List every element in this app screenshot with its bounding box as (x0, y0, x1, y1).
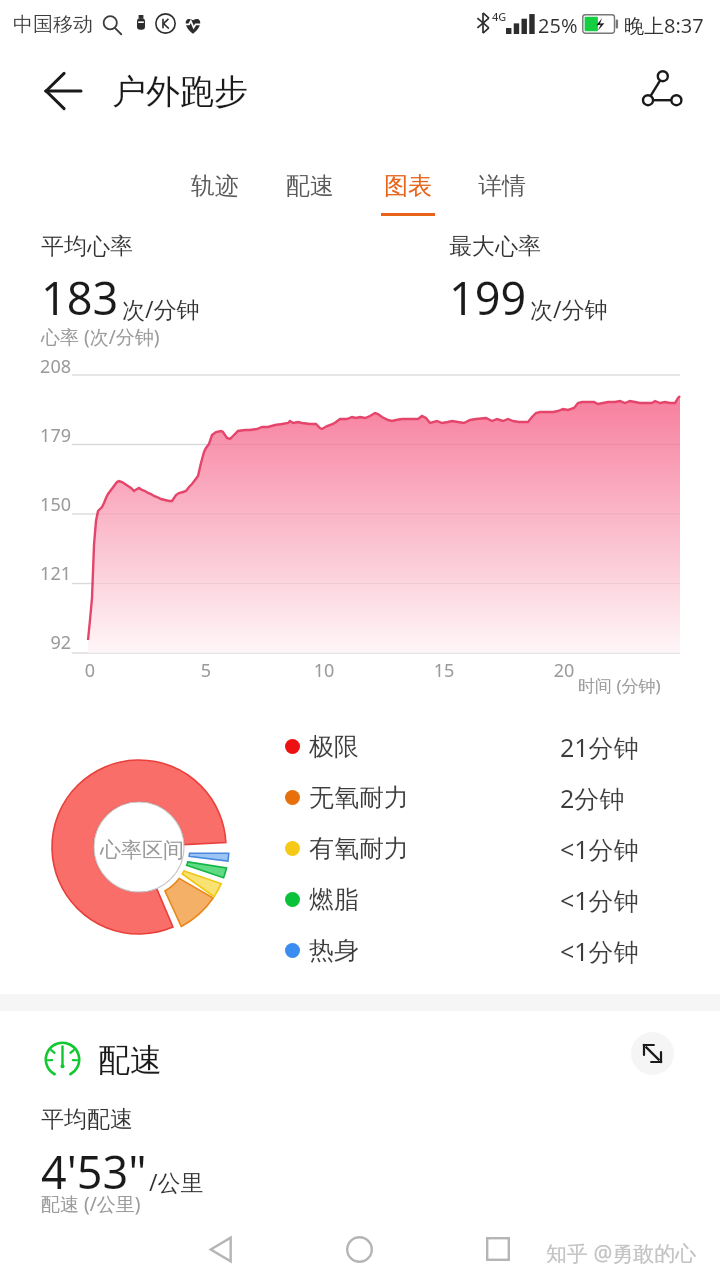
button[interactable]: 热身 (285, 925, 660, 976)
staticText: 户外跑步 (112, 70, 248, 113)
staticText: <1分钟 (560, 934, 639, 968)
staticText: 燃脂 (309, 884, 359, 915)
staticText: 5 (194, 658, 218, 683)
button[interactable]: Expand (631, 1032, 674, 1075)
button[interactable]: Share (624, 55, 692, 123)
button[interactable]: Back (27, 55, 99, 127)
button[interactable]: 无氧耐力 (285, 772, 660, 823)
staticText: 15 (432, 658, 456, 683)
staticText: 热身 (309, 935, 359, 966)
staticText: 平均配速 (41, 1105, 133, 1134)
button[interactable]: 图表 (366, 168, 450, 216)
button[interactable]: 有氧耐力 (285, 823, 660, 874)
staticText: 晚上8:37 (624, 12, 704, 39)
staticText: 0 (78, 658, 102, 683)
staticText: 4'53" (41, 1141, 147, 1202)
staticText: 配速 (/公里) (41, 1191, 141, 1217)
staticText: 极限 (309, 731, 359, 762)
button[interactable]: 极限 (285, 721, 660, 772)
staticText: 21分钟 (560, 730, 639, 764)
staticText: 2分钟 (560, 781, 625, 815)
staticText: 图表 (384, 171, 432, 201)
button[interactable]: 配速 (268, 168, 352, 216)
staticText: 详情 (478, 171, 526, 201)
button[interactable]: Back (193, 1221, 249, 1277)
button[interactable]: Recents (470, 1221, 526, 1277)
staticText: 121 (20, 561, 71, 586)
staticText: 150 (20, 492, 71, 517)
button[interactable]: 详情 (460, 168, 544, 216)
staticText: 平均心率 (41, 232, 133, 261)
staticText: 配速 (98, 1040, 162, 1080)
staticText: 最大心率 (449, 232, 541, 261)
staticText: 中国移动 (13, 12, 93, 37)
staticText: 次/分钟 (530, 293, 608, 324)
staticText: 179 (20, 423, 71, 448)
staticText: /公里 (149, 1166, 204, 1197)
button[interactable]: 燃脂 (285, 874, 660, 925)
staticText: 199 (449, 267, 527, 328)
staticText: 心率 (次/分钟) (41, 324, 160, 350)
button[interactable]: Home (331, 1221, 387, 1277)
staticText: 心率区间 (100, 837, 184, 863)
staticText: 无氧耐力 (309, 782, 409, 813)
staticText: <1分钟 (560, 832, 639, 866)
staticText: 25% (538, 12, 578, 39)
staticText: <1分钟 (560, 883, 639, 917)
staticText: 4G (492, 9, 507, 24)
staticText: 知乎 @勇敢的心 (546, 1239, 697, 1268)
staticText: 时间 (分钟) (578, 674, 661, 697)
staticText: 208 (20, 354, 71, 379)
staticText: 有氧耐力 (309, 833, 409, 864)
staticText: 配速 (286, 171, 334, 201)
button[interactable]: 轨迹 (173, 168, 257, 216)
staticText: 183 (41, 267, 119, 328)
staticText: 92 (20, 630, 71, 655)
staticText: 10 (312, 658, 336, 683)
staticText: 20 (552, 658, 576, 683)
staticText: 次/分钟 (122, 293, 200, 324)
staticText: 轨迹 (191, 171, 239, 201)
